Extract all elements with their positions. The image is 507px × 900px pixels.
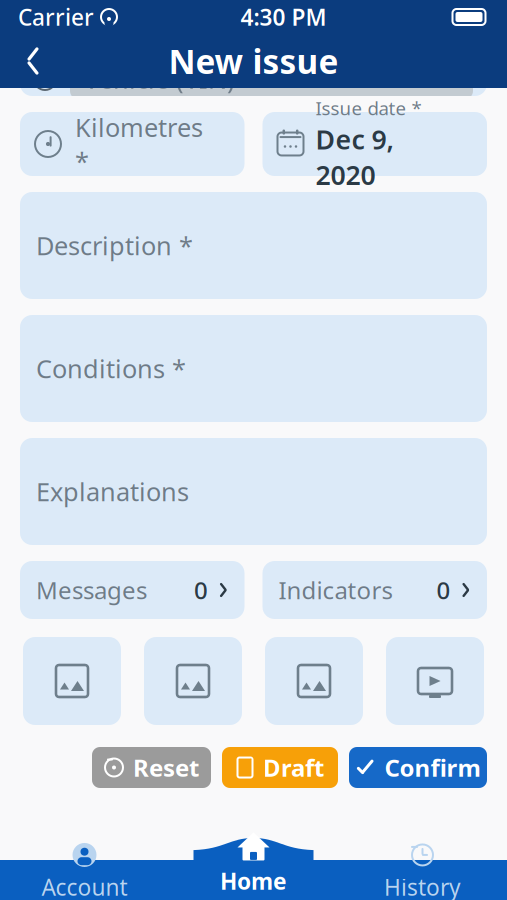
staticText: Kilometres * (75, 110, 203, 178)
button[interactable]: History (338, 841, 507, 900)
staticText: New issue (168, 39, 338, 83)
staticText: Indicators (278, 574, 392, 606)
staticText: Carrier (18, 2, 94, 32)
staticText: Description * (36, 229, 193, 262)
button[interactable]: Home (169, 833, 338, 895)
button[interactable]: Add photo 1 (23, 637, 121, 725)
button[interactable]: Confirm (349, 747, 487, 788)
button[interactable]: Add photo 3 (265, 637, 363, 725)
staticText: 4:30 PM (240, 2, 326, 32)
button[interactable]: Explanations (20, 438, 487, 545)
button[interactable]: Issue date * (262, 112, 487, 176)
staticText: Conditions * (36, 352, 186, 385)
button[interactable]: Indicators (262, 561, 487, 619)
staticText: Issue date * (315, 96, 421, 120)
staticText: Draft (263, 752, 324, 783)
button[interactable]: Vehicle (VIN) (20, 49, 487, 109)
staticText: Reset (133, 752, 199, 783)
staticText: 0 (436, 574, 450, 606)
button[interactable]: Back (10, 38, 56, 84)
button[interactable]: Reset (92, 747, 211, 788)
staticText: Explanations (36, 475, 189, 508)
staticText: History (384, 872, 461, 900)
staticText: Account (41, 872, 127, 900)
staticText: Confirm (384, 752, 480, 783)
staticText: Messages (36, 574, 147, 606)
staticText: Vehicle (VIN) (84, 62, 235, 96)
staticText: 0 (194, 574, 208, 606)
button[interactable]: Kilometres * (20, 112, 244, 176)
button[interactable]: Description * (20, 192, 487, 299)
button[interactable]: Add photo 2 (144, 637, 242, 725)
button[interactable]: Messages (20, 561, 244, 619)
button[interactable]: Draft (222, 747, 338, 788)
button[interactable]: Account (0, 841, 169, 900)
button[interactable]: Conditions * (20, 315, 487, 422)
staticText: Dec 9, 2020 (315, 121, 393, 192)
staticText: Home (220, 866, 287, 896)
button[interactable]: Add video (386, 637, 484, 725)
